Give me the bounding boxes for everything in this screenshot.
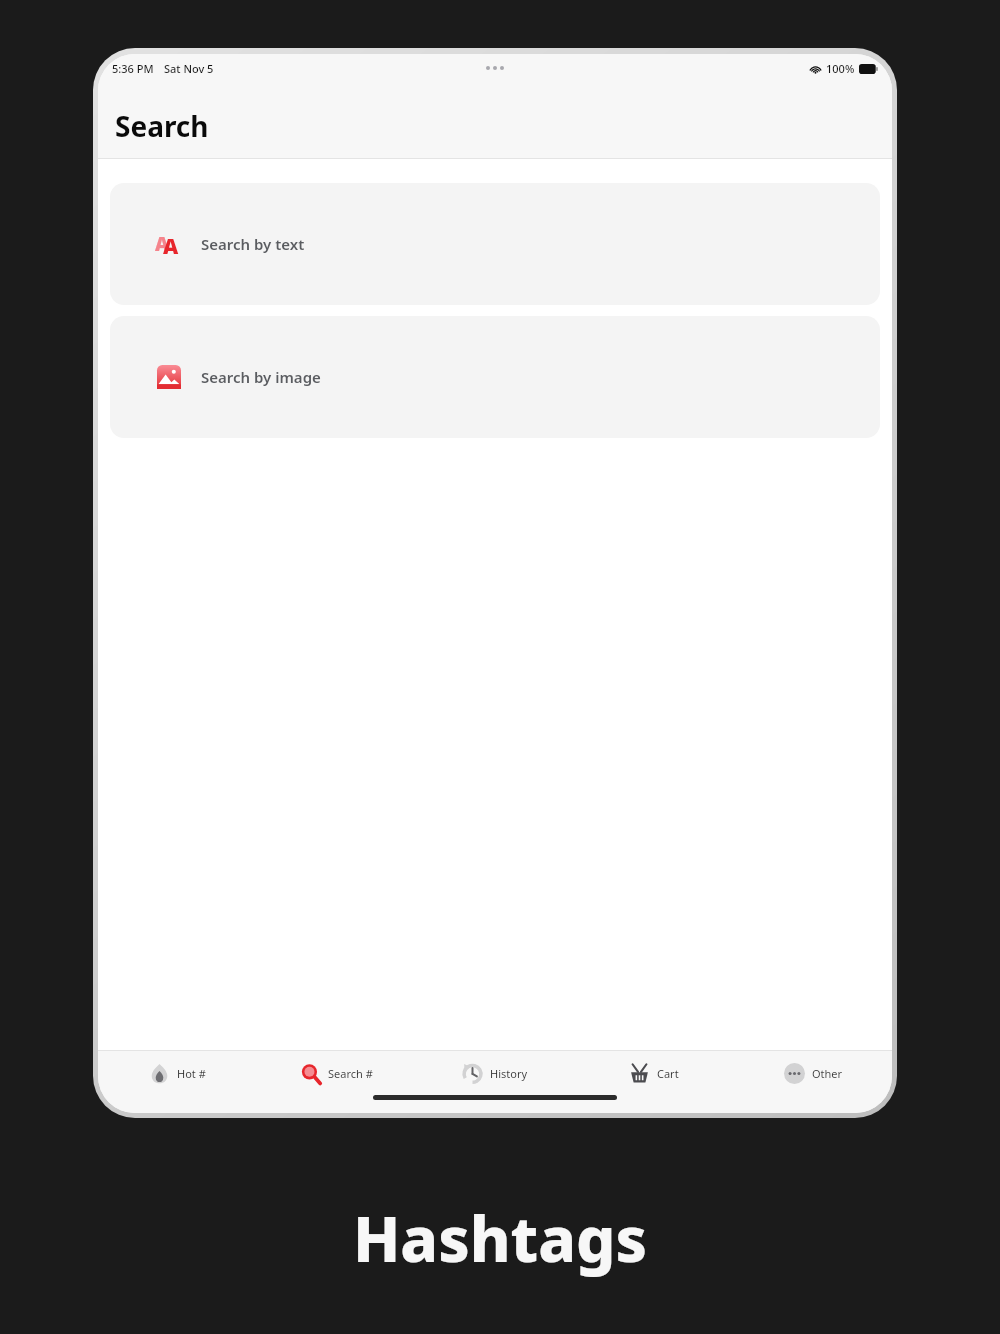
button[interactable]: Search # [256,1051,415,1095]
staticText: History [490,1066,528,1081]
staticText: 5:36 PM [112,61,154,76]
button[interactable]: Search by image [110,316,880,438]
button[interactable]: History [415,1051,574,1095]
staticText: Hashtags [0,1196,1000,1280]
button[interactable]: Other [733,1051,892,1095]
button[interactable]: Hot # [98,1051,256,1095]
staticText: Hot # [177,1066,206,1081]
staticText: A [155,231,169,257]
staticText: Sat Nov 5 [164,61,214,76]
staticText: A [163,232,179,258]
staticText: Search [115,107,209,145]
staticText: Search by image [201,367,321,387]
staticText: Search # [328,1066,373,1081]
staticText: Cart [657,1066,679,1081]
staticText: 100% [826,61,855,76]
staticText: Search by text [201,234,305,254]
staticText: Other [812,1066,843,1081]
button[interactable]: Cart [574,1051,733,1095]
button[interactable]: A [110,183,880,305]
